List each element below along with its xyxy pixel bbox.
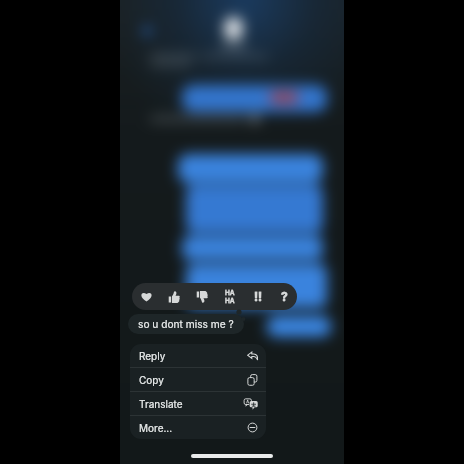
button[interactable]: Emphasize: [244, 283, 272, 310]
button[interactable]: More...: [130, 416, 266, 439]
staticText: ?: [281, 289, 288, 304]
staticText: !!: [254, 289, 263, 304]
button[interactable]: so u dont miss me ?: [128, 314, 244, 334]
button[interactable]: Copy: [130, 368, 266, 391]
button[interactable]: Laugh: [216, 283, 244, 310]
staticText: Copy: [139, 374, 164, 386]
button[interactable]: Love: [132, 283, 160, 310]
button[interactable]: Like: [160, 283, 188, 310]
staticText: Translate: [139, 398, 183, 410]
button[interactable]: Question: [272, 283, 297, 310]
button[interactable]: Dislike: [188, 283, 216, 310]
staticText: Reply: [139, 350, 166, 362]
staticText: HA: [225, 289, 235, 297]
button[interactable]: Reply: [130, 344, 266, 367]
staticText: HA: [225, 297, 235, 305]
staticText: so u dont miss me ?: [138, 318, 234, 330]
staticText: More...: [139, 422, 173, 434]
button[interactable]: Translate: [130, 392, 266, 415]
